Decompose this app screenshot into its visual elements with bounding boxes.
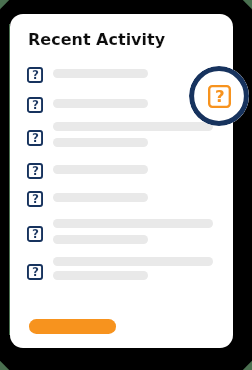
staticText: Recent Activity (28, 30, 166, 49)
staticText: ? (32, 98, 39, 112)
button[interactable]: Activity item (27, 226, 43, 242)
staticText: ? (32, 192, 39, 206)
staticText: ? (32, 131, 39, 145)
button[interactable]: Activity item (27, 163, 43, 179)
staticText: ? (32, 68, 39, 82)
button[interactable]: Activity item (27, 264, 43, 280)
staticText: ? (32, 164, 39, 178)
staticText: ? (32, 227, 39, 241)
button[interactable]: Activity item (27, 191, 43, 207)
staticText: ? (32, 265, 39, 279)
button[interactable]: Activity item (27, 67, 43, 83)
button[interactable]: Activity item (27, 130, 43, 146)
button[interactable]: Help (189, 66, 249, 126)
button[interactable]: Activity item (27, 97, 43, 113)
staticText: ? (215, 87, 225, 106)
button[interactable]: Primary action (29, 319, 116, 334)
